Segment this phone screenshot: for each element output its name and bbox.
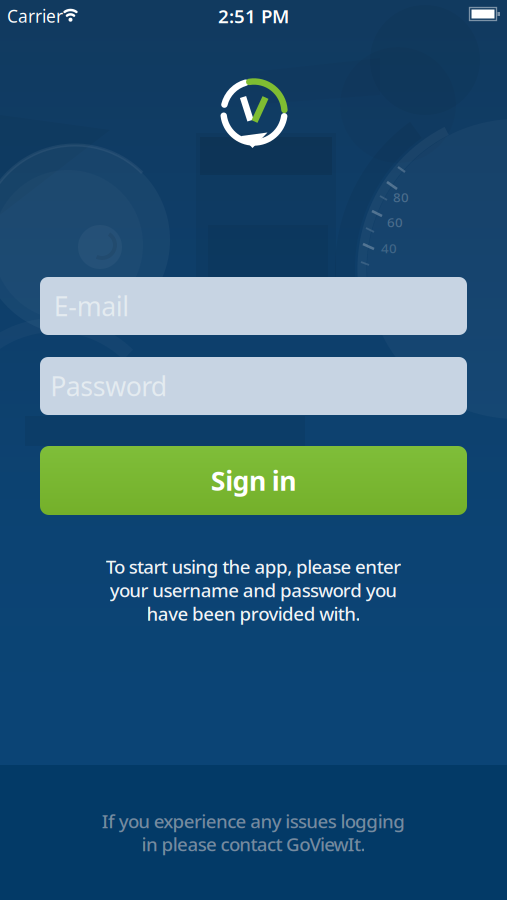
staticText: your username and password you <box>110 578 397 602</box>
button[interactable]: Password <box>40 357 467 415</box>
staticText: 60 <box>387 213 403 231</box>
staticText: Sign in <box>211 463 296 498</box>
staticText: Carrier <box>7 4 63 27</box>
button[interactable]: E-mail <box>40 277 467 335</box>
staticText: 40 <box>381 239 397 257</box>
staticText: If you experience any issues logging <box>102 809 405 833</box>
staticText: have been provided with. <box>147 601 360 626</box>
staticText: E-mail <box>54 288 129 324</box>
staticText: 80 <box>393 188 409 206</box>
staticText: 2:51 PM <box>218 4 289 28</box>
staticText: To start using the app, please enter <box>106 554 401 579</box>
button[interactable]: Sign in <box>40 446 467 515</box>
staticText: Password <box>50 368 167 404</box>
staticText: in please contact GoViewIt. <box>142 832 365 856</box>
